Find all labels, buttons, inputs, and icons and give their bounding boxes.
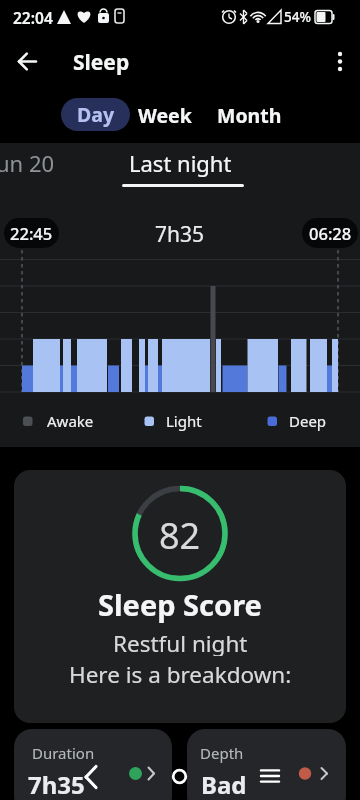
button[interactable] xyxy=(72,757,112,797)
button[interactable]: Depth xyxy=(187,729,346,800)
staticText: 7h35 xyxy=(28,768,85,800)
button[interactable] xyxy=(326,48,354,76)
staticText: Month xyxy=(217,102,282,129)
button[interactable]: Jun 20 xyxy=(0,148,62,178)
staticText: Duration xyxy=(32,743,95,763)
staticText: Last night xyxy=(129,148,232,178)
staticText: Week xyxy=(138,102,192,129)
button[interactable] xyxy=(10,50,50,74)
staticText: Sleep xyxy=(73,48,130,76)
staticText: Sleep Score xyxy=(98,585,262,623)
staticText: 22:45 xyxy=(10,222,53,244)
staticText: 06:28 xyxy=(309,222,352,244)
button[interactable] xyxy=(250,757,290,797)
staticText: Day xyxy=(77,101,115,128)
button[interactable]: Week xyxy=(136,100,194,130)
staticText: Depth xyxy=(200,743,244,763)
staticText: Restful night xyxy=(113,628,248,656)
staticText: Light xyxy=(166,411,202,431)
staticText: 82 xyxy=(159,511,201,553)
staticText: Jun 20 xyxy=(0,148,55,178)
button[interactable]: Last night xyxy=(120,148,240,178)
staticText: 54% xyxy=(284,8,311,26)
button[interactable]: 82 xyxy=(14,470,346,723)
button[interactable]: Month xyxy=(210,100,288,130)
staticText: Bad xyxy=(201,768,247,800)
staticText: Here is a breakdown: xyxy=(69,659,292,687)
staticText: Awake xyxy=(47,411,94,431)
button[interactable]: Day xyxy=(61,98,130,131)
staticText: 7h35 xyxy=(155,220,205,246)
staticText: 22:04 xyxy=(13,7,53,28)
staticText: Deep xyxy=(289,411,327,431)
button[interactable] xyxy=(160,757,200,797)
button[interactable]: Duration xyxy=(14,729,172,800)
